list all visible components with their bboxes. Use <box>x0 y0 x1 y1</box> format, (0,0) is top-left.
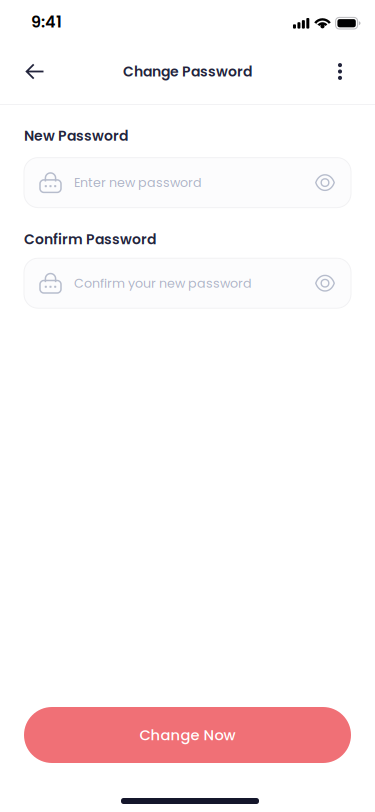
button[interactable]: Back <box>13 49 57 93</box>
staticText: Change Password <box>123 62 252 81</box>
staticText: New Password <box>24 126 128 146</box>
button[interactable]: Change Now <box>24 707 351 763</box>
button[interactable]: More options <box>318 49 362 93</box>
staticText: Change Now <box>139 725 235 745</box>
staticText: 9:41 <box>31 11 62 33</box>
staticText: Enter new password <box>74 174 202 191</box>
staticText: Confirm Password <box>24 230 156 249</box>
button[interactable]: Show password <box>306 264 344 302</box>
staticText: Confirm your new password <box>74 274 252 292</box>
button[interactable]: Show password <box>306 164 344 202</box>
